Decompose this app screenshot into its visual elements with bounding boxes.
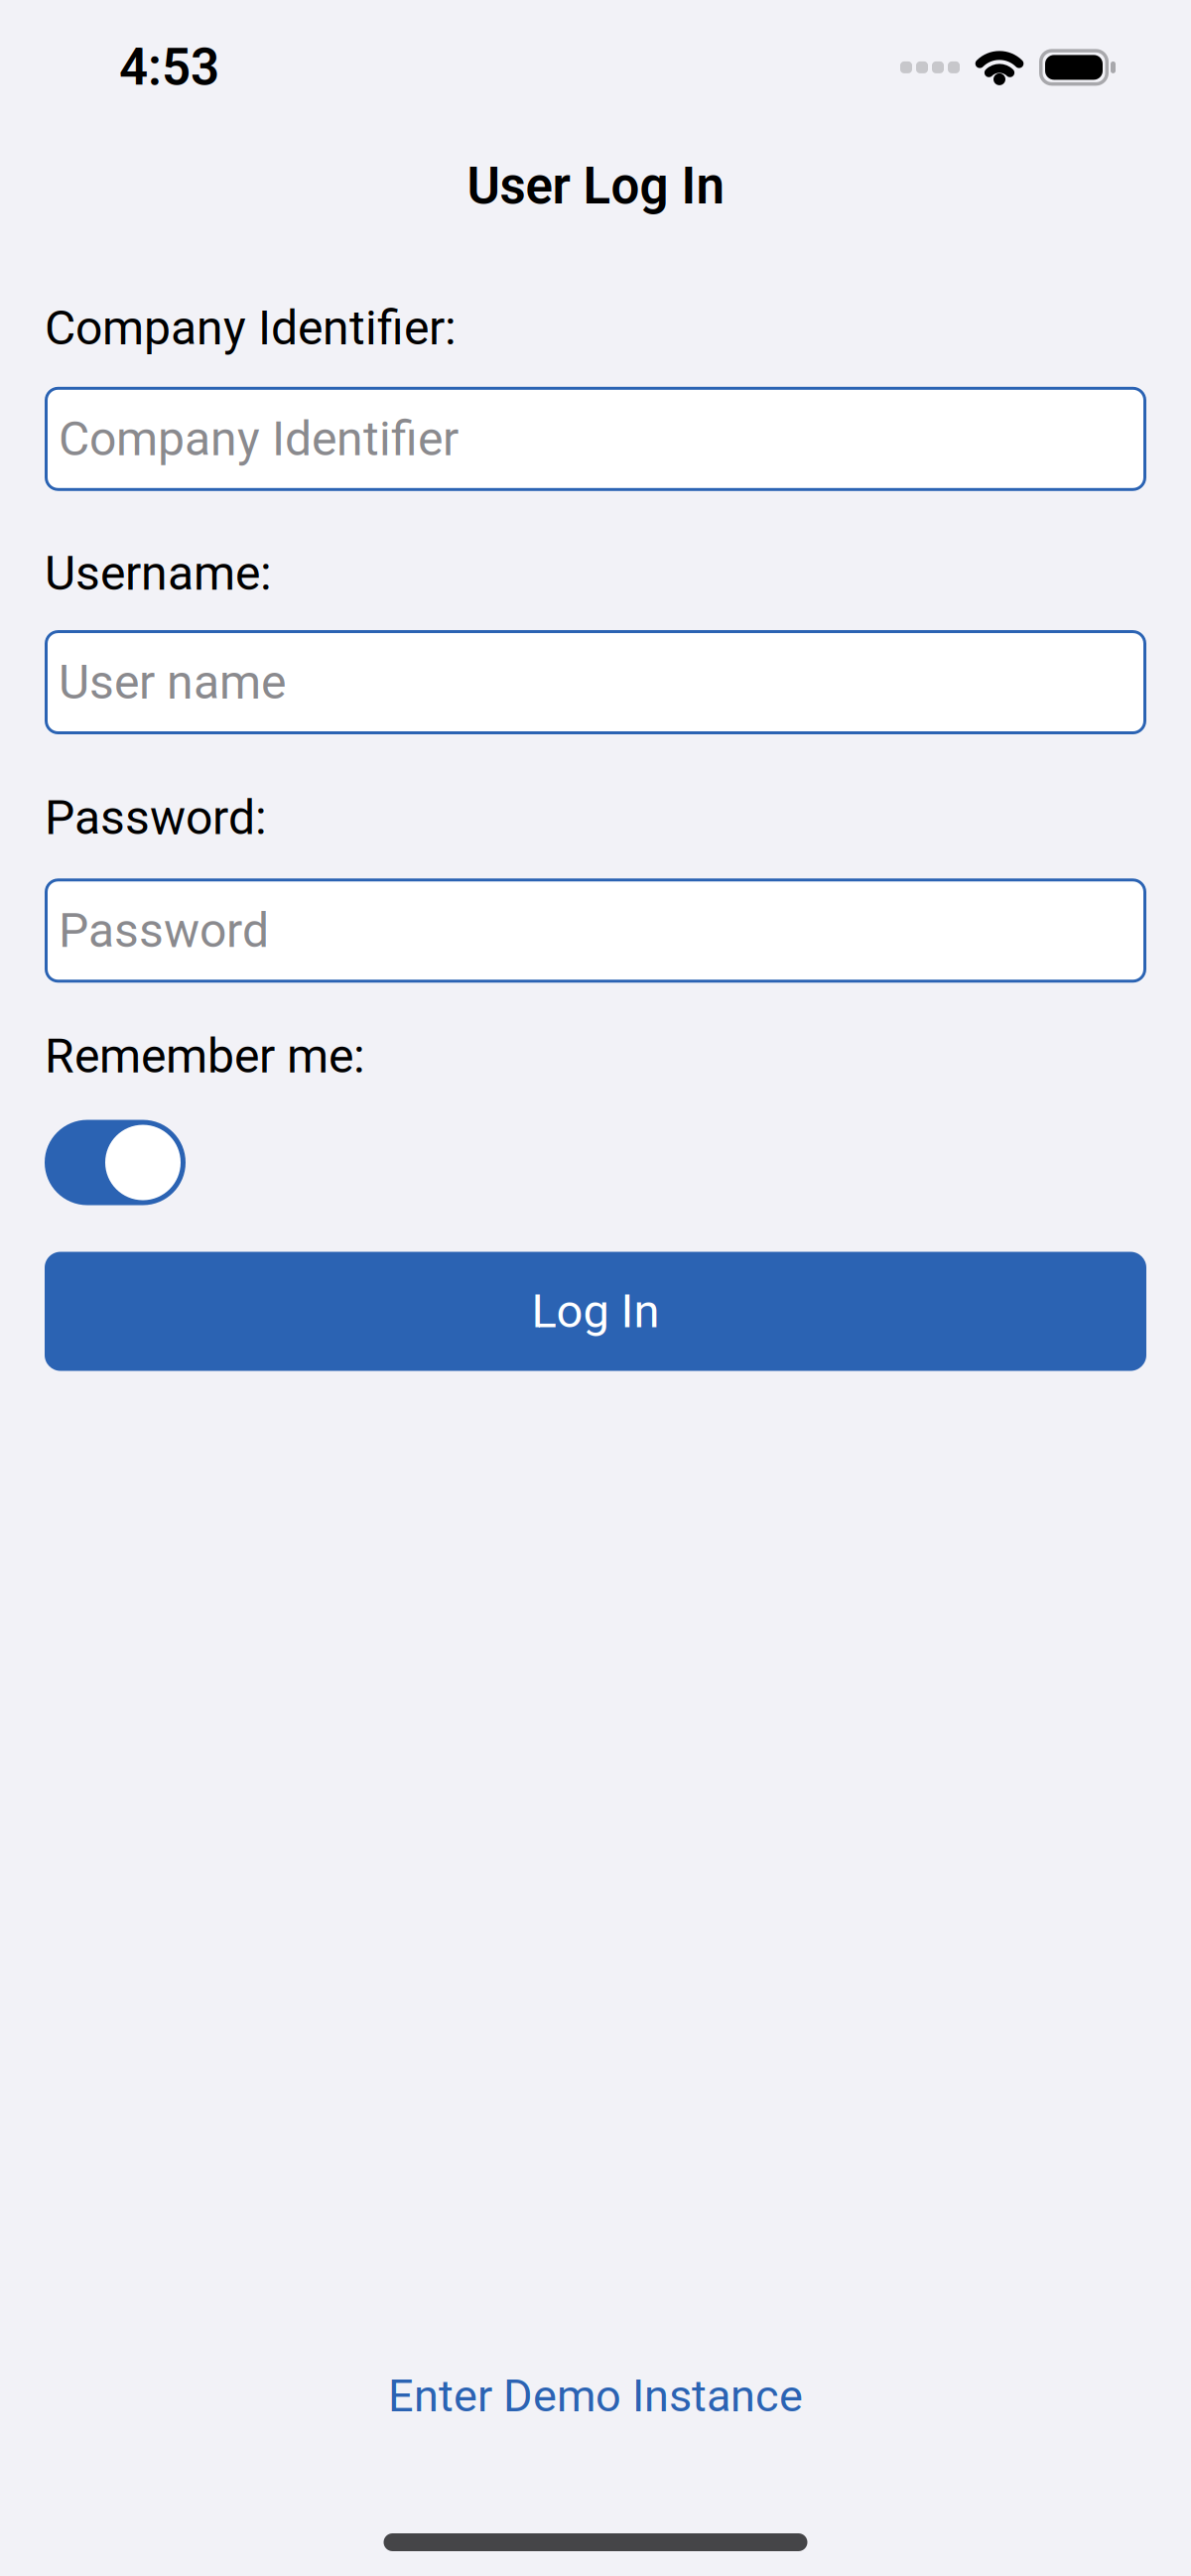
staticText: Company Identifier:: [45, 300, 457, 356]
staticText: Password:: [45, 790, 267, 846]
staticText: 4:53: [119, 38, 219, 97]
staticText: Company Identifier: [59, 411, 459, 467]
staticText: Enter Demo Instance: [388, 2370, 803, 2422]
staticText: Password: [59, 903, 269, 958]
button[interactable]: [45, 1120, 186, 1205]
button[interactable]: Log In: [45, 1252, 1146, 1371]
staticText: User Log In: [467, 157, 724, 216]
staticText: Remember me:: [45, 1028, 365, 1084]
button[interactable]: Enter Demo Instance: [388, 2370, 803, 2422]
staticText: Username:: [45, 546, 272, 601]
staticText: Log In: [531, 1284, 660, 1339]
staticText: User name: [59, 654, 286, 710]
